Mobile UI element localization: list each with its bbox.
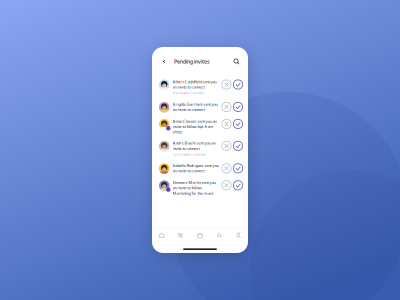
staticText: 12 minutes remain bbox=[172, 151, 205, 157]
button[interactable]: Albert Cauldfield sent you an invite to … bbox=[152, 76, 248, 98]
staticText: Brigitte Garrlock sent you an invite to … bbox=[172, 101, 217, 112]
button[interactable]: Home bbox=[152, 227, 171, 243]
button[interactable]: Notifications bbox=[210, 227, 229, 243]
button[interactable]: Jobs bbox=[190, 227, 210, 243]
staticText: Albert Cauldfield sent you an invite to … bbox=[172, 79, 216, 90]
button[interactable]: Search bbox=[233, 58, 240, 65]
button[interactable]: Andre Biachi sent you an invite to conne… bbox=[152, 137, 248, 160]
button[interactable]: Izabella Rodrigues sent you an invite to… bbox=[152, 160, 248, 177]
button[interactable]: Eleonore Merlin sent you an invite to fo… bbox=[152, 177, 248, 199]
button[interactable]: Brigitte Garrlock sent you an invite to … bbox=[152, 98, 248, 115]
staticText: Pending invites bbox=[174, 58, 210, 65]
staticText: Izabella Rodrigues sent you an invite to… bbox=[172, 163, 218, 173]
button[interactable]: Profile bbox=[229, 227, 248, 243]
staticText: Anna Clasam sent you an invite to follow… bbox=[172, 118, 216, 134]
staticText: Andre Biachi sent you an invite to conne… bbox=[172, 140, 215, 151]
button[interactable]: My Network bbox=[171, 227, 190, 243]
button[interactable]: Back bbox=[161, 58, 167, 64]
staticText: 4 minutes remain bbox=[172, 90, 203, 95]
button[interactable]: Anna Clasam sent you an invite to follow… bbox=[152, 115, 248, 137]
staticText: Eleonore Merlin sent you an invite to fo… bbox=[172, 180, 215, 196]
